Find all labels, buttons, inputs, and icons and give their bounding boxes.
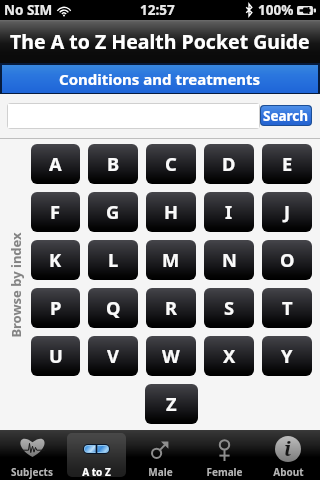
button[interactable]: V — [88, 336, 138, 376]
staticText: S — [224, 295, 235, 320]
staticText: Search — [263, 107, 309, 125]
staticText: I — [225, 199, 233, 224]
button[interactable]: H — [146, 192, 196, 232]
staticText: Subjects — [11, 465, 53, 479]
button[interactable]: A to Z — [64, 430, 128, 480]
button[interactable]: Search — [261, 106, 311, 125]
staticText: C — [165, 151, 177, 176]
button[interactable]: M — [146, 240, 196, 280]
staticText: P — [50, 295, 62, 320]
button[interactable]: X — [204, 336, 254, 376]
button[interactable]: O — [262, 240, 312, 280]
button[interactable]: L — [88, 240, 138, 280]
staticText: The A to Z Health Pocket Guide — [10, 28, 310, 55]
button[interactable]: T — [262, 288, 312, 328]
button[interactable]: Male — [128, 430, 192, 480]
button[interactable]: Subjects — [0, 430, 64, 480]
button[interactable]: P — [31, 288, 80, 328]
button[interactable]: U — [31, 336, 80, 376]
staticText: M — [162, 247, 180, 272]
staticText: No SIM — [4, 1, 53, 19]
button[interactable]: F — [31, 192, 80, 232]
staticText: L — [108, 247, 119, 272]
staticText: T — [282, 295, 293, 320]
staticText: Conditions and treatments — [59, 69, 261, 89]
staticText: W — [162, 343, 180, 368]
button[interactable]: Female — [192, 430, 256, 480]
staticText: F — [50, 199, 61, 224]
button[interactable]: D — [204, 144, 254, 184]
staticText: Male — [148, 465, 173, 479]
staticText: Q — [106, 295, 121, 320]
button[interactable]: J — [262, 192, 312, 232]
button[interactable]: C — [146, 144, 196, 184]
staticText: K — [49, 247, 62, 272]
button[interactable]: G — [88, 192, 138, 232]
button[interactable]: I — [204, 192, 254, 232]
button[interactable]: R — [146, 288, 196, 328]
button[interactable]: B — [88, 144, 138, 184]
staticText: O — [280, 247, 295, 272]
staticText: U — [49, 343, 63, 368]
button[interactable]: E — [262, 144, 312, 184]
staticText: V — [107, 343, 119, 368]
staticText: H — [164, 199, 178, 224]
staticText: 12:57 — [140, 1, 175, 19]
button[interactable]: A — [31, 144, 80, 184]
button[interactable]: i — [256, 430, 320, 480]
staticText: R — [165, 295, 178, 320]
staticText: D — [222, 151, 236, 176]
button[interactable]: W — [146, 336, 196, 376]
staticText: G — [106, 199, 120, 224]
staticText: Z — [166, 391, 177, 416]
staticText: B — [107, 151, 120, 176]
button[interactable]: Y — [262, 336, 312, 376]
staticText: A to Z — [82, 465, 111, 479]
staticText: A — [49, 151, 62, 176]
button[interactable]: S — [204, 288, 254, 328]
staticText: About — [273, 465, 304, 479]
staticText: X — [223, 343, 236, 368]
button[interactable]: Z — [145, 384, 198, 424]
staticText: E — [282, 151, 293, 176]
button[interactable]: K — [31, 240, 80, 280]
button[interactable]: Q — [88, 288, 138, 328]
staticText: 100% — [258, 1, 294, 19]
button[interactable]: N — [204, 240, 254, 280]
staticText: Browse by index — [7, 232, 25, 338]
staticText: J — [284, 199, 291, 224]
staticText: Y — [281, 343, 293, 368]
staticText: N — [222, 247, 237, 272]
staticText: i — [284, 435, 292, 461]
staticText: Female — [206, 465, 243, 479]
